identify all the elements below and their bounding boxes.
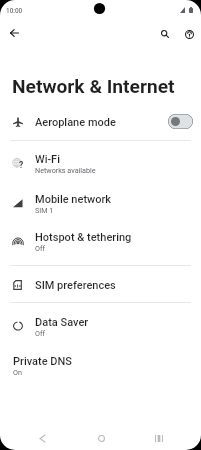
staticText: Off: [35, 329, 45, 337]
staticText: 10:00: [6, 7, 23, 15]
button[interactable]: Mobile network: [0, 184, 201, 222]
staticText: Data Saver: [35, 316, 89, 329]
button[interactable]: Help: [176, 21, 201, 47]
staticText: Private DNS: [13, 355, 72, 368]
staticText: Network & Internet: [12, 75, 175, 98]
staticText: Mobile network: [35, 193, 112, 206]
button[interactable]: [168, 114, 193, 129]
staticText: Hotspot & tethering: [35, 231, 132, 244]
staticText: Off: [35, 244, 45, 252]
staticText: Wi-Fi: [35, 153, 60, 166]
button[interactable]: Aeroplane mode: [0, 106, 201, 138]
button[interactable]: Data Saver: [0, 307, 201, 345]
button[interactable]: Search: [152, 21, 178, 47]
button[interactable]: Recent apps: [139, 424, 179, 450]
button[interactable]: Wi-Fi: [0, 144, 201, 182]
button[interactable]: SIM preferences: [0, 269, 201, 301]
button[interactable]: Private DNS: [0, 346, 201, 384]
button[interactable]: Hotspot & tethering: [0, 222, 201, 260]
button[interactable]: Home: [81, 424, 121, 450]
staticText: SIM 1: [35, 206, 54, 214]
staticText: On: [13, 368, 22, 376]
staticText: Aeroplane mode: [35, 116, 116, 129]
staticText: SIM preferences: [35, 279, 116, 292]
staticText: ?: [19, 160, 24, 170]
staticText: Networks available: [35, 166, 96, 174]
button[interactable]: Back: [2, 21, 26, 45]
button[interactable]: Back: [22, 424, 62, 450]
